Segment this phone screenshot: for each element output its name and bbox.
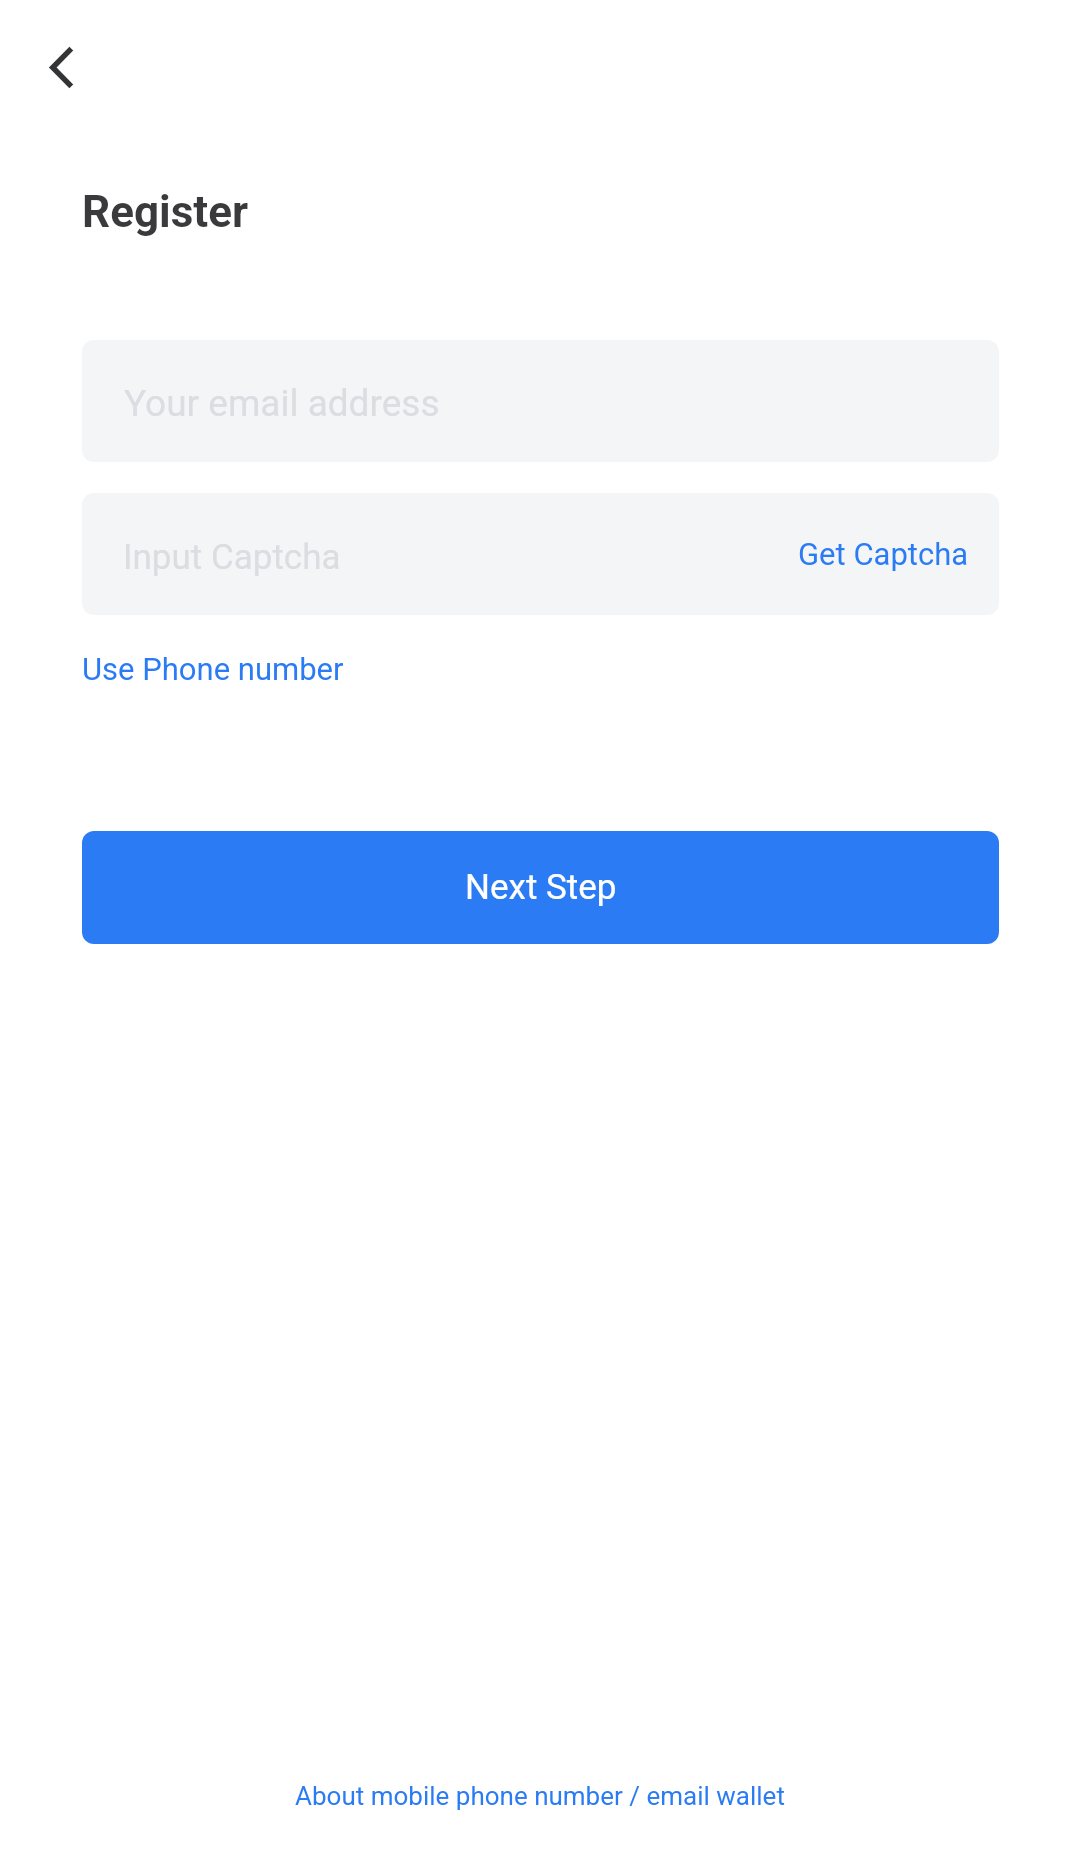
button[interactable] [82,340,999,462]
button[interactable]: Use Phone number [82,651,344,687]
staticText: About mobile phone number / email wallet [295,1781,785,1811]
staticText: Use Phone number [82,651,344,687]
button[interactable]: Back [14,19,110,115]
staticText: Next Step [465,867,617,908]
staticText: Get Captcha [798,536,969,572]
button[interactable]: About mobile phone number / email wallet [270,1771,810,1821]
button[interactable] [82,493,999,615]
button[interactable]: Next Step [82,831,999,944]
staticText: Register [82,186,249,238]
staticText: Input Captcha [123,537,341,578]
staticText: Your email address [124,382,440,425]
button[interactable]: Get Captcha [770,493,998,614]
